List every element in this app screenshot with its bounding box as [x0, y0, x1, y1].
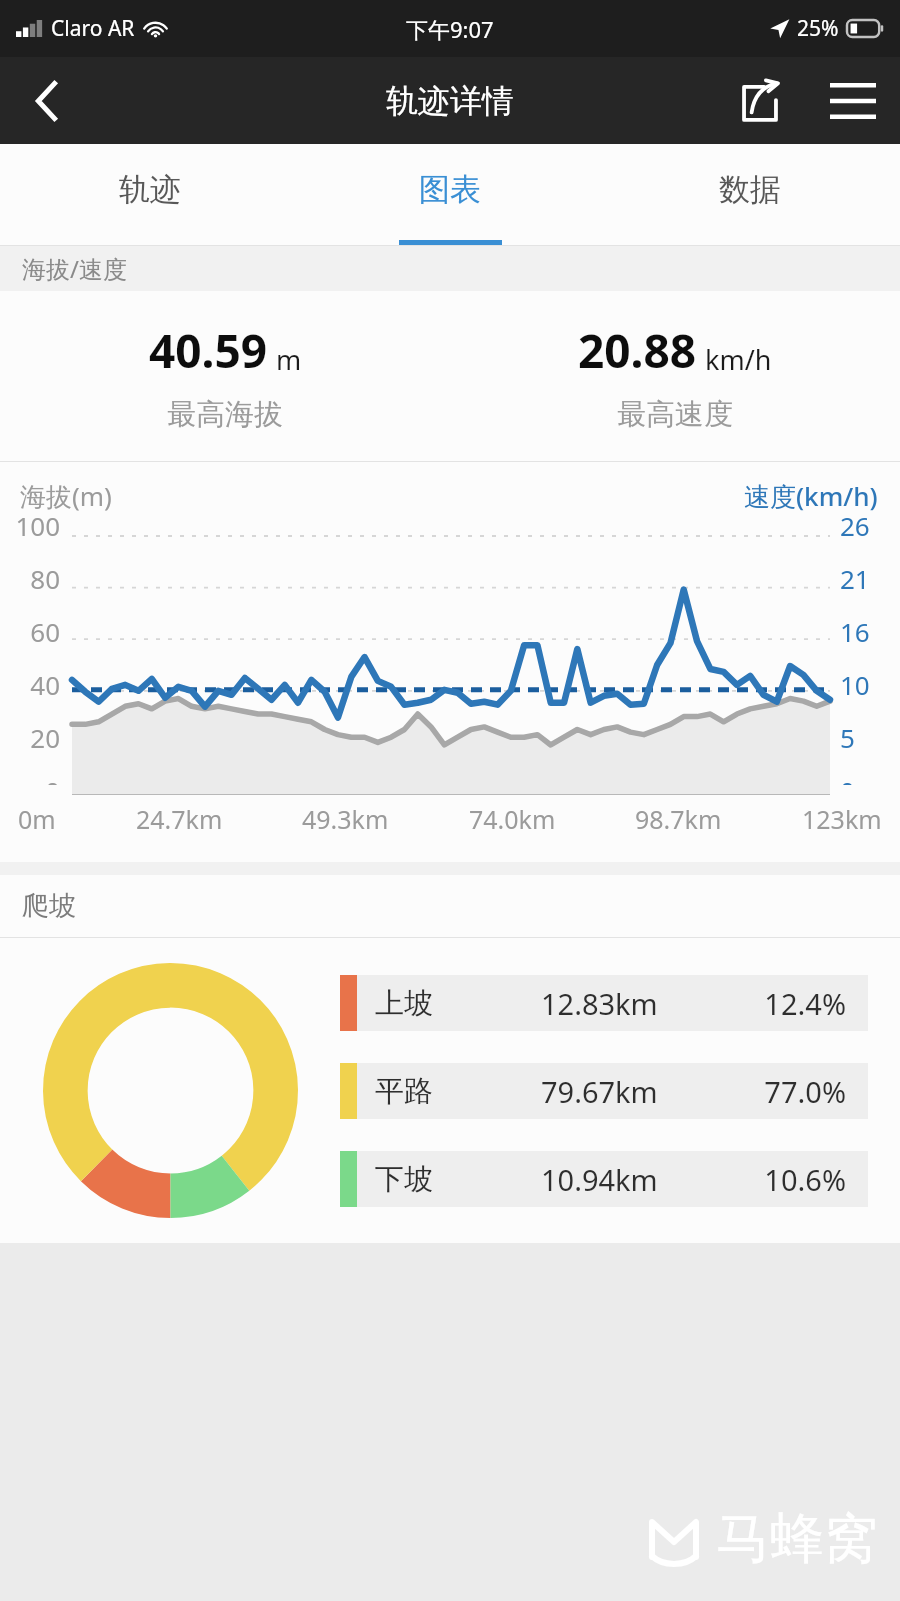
staticText: 79.67km — [541, 1072, 731, 1111]
staticText: 最高速度 — [617, 396, 733, 433]
staticText: 平路 — [375, 1073, 433, 1110]
staticText: 49.3km — [302, 802, 389, 836]
button[interactable]: 下坡 — [340, 1151, 868, 1207]
staticText: 10.6% — [731, 1160, 846, 1199]
staticText: 77.0% — [731, 1072, 846, 1111]
staticText: 0m — [18, 802, 56, 836]
staticText: 爬坡 — [22, 889, 76, 923]
staticText: 0 — [0, 773, 60, 785]
staticText: 26 — [840, 508, 900, 543]
staticText: 20.88 — [578, 319, 697, 382]
staticText: 图表 — [419, 170, 481, 209]
button[interactable]: 图表 — [300, 144, 600, 245]
staticText: 马蜂窝 — [716, 1505, 878, 1573]
staticText: 80 — [0, 561, 60, 596]
staticText: 12.4% — [731, 984, 846, 1023]
staticText: 速度(km/h) — [744, 478, 878, 514]
staticText: 上坡 — [375, 985, 433, 1022]
staticText: 98.7km — [635, 802, 722, 836]
button[interactable]: 平路 — [340, 1063, 868, 1119]
staticText: 12.83km — [541, 984, 731, 1023]
staticText: 轨迹详情 — [386, 81, 514, 121]
staticText: 40.59 — [149, 319, 268, 382]
button[interactable]: 数据 — [600, 144, 900, 245]
button[interactable]: Share — [715, 57, 805, 144]
staticText: 海拔/速度 — [22, 252, 127, 285]
staticText: 123km — [802, 802, 882, 836]
staticText: 74.0km — [469, 802, 556, 836]
button[interactable]: 上坡 — [340, 975, 868, 1031]
staticText: 16 — [840, 614, 900, 649]
button[interactable]: 轨迹 — [0, 144, 300, 245]
staticText: 100 — [0, 508, 60, 543]
staticText: 40 — [0, 667, 60, 702]
staticText: 数据 — [719, 170, 781, 209]
staticText: 21 — [840, 561, 900, 596]
staticText: 5 — [840, 720, 900, 755]
staticText: km/h — [705, 341, 772, 378]
staticText: 24.7km — [136, 802, 223, 836]
staticText: 下午9:07 — [406, 14, 494, 44]
staticText: 下坡 — [375, 1161, 433, 1198]
staticText: 最高海拔 — [167, 396, 283, 433]
staticText: 25% — [797, 14, 839, 43]
button[interactable]: Menu — [805, 57, 900, 144]
staticText: m — [276, 341, 302, 378]
staticText: 10 — [840, 667, 900, 702]
staticText: 0 — [840, 773, 900, 785]
staticText: 轨迹 — [119, 170, 181, 209]
staticText: 海拔(m) — [20, 478, 112, 514]
staticText: 10.94km — [541, 1160, 731, 1199]
staticText: 20 — [0, 720, 60, 755]
staticText: 60 — [0, 614, 60, 649]
button[interactable]: Back — [0, 57, 95, 144]
staticText: Claro AR — [51, 14, 135, 43]
